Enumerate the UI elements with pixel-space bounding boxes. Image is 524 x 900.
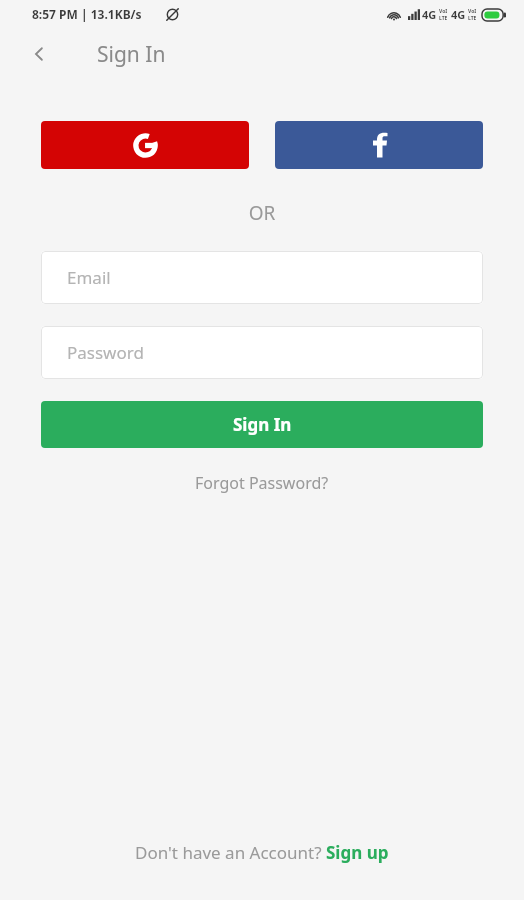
button[interactable]: Email — [41, 251, 483, 304]
staticText: LTE — [468, 15, 477, 22]
staticText: Password — [67, 341, 144, 364]
staticText: Don't have an Account? Sign up — [135, 841, 389, 864]
staticText: 8:57 PM | 13.1KB/s — [32, 6, 142, 22]
button[interactable]: Forgot Password? — [0, 466, 524, 500]
button[interactable]: Sign in with Google — [41, 121, 249, 169]
staticText: 4G — [451, 7, 466, 22]
button[interactable]: Password — [41, 326, 483, 379]
button[interactable]: Sign in with Facebook — [275, 121, 483, 169]
staticText: Email — [67, 266, 111, 289]
staticText: Sign In — [233, 413, 292, 436]
staticText: LTE — [439, 15, 448, 22]
staticText: VoI — [468, 8, 477, 15]
button[interactable]: Don't have an Account? Sign up — [0, 833, 524, 872]
staticText: OR — [0, 200, 524, 226]
staticText: 4G — [422, 7, 437, 22]
staticText: VoI — [439, 8, 448, 15]
button[interactable]: Sign In — [41, 401, 483, 448]
button[interactable]: Back — [22, 37, 56, 71]
staticText: Sign In — [97, 40, 166, 69]
staticText: Forgot Password? — [195, 472, 329, 494]
